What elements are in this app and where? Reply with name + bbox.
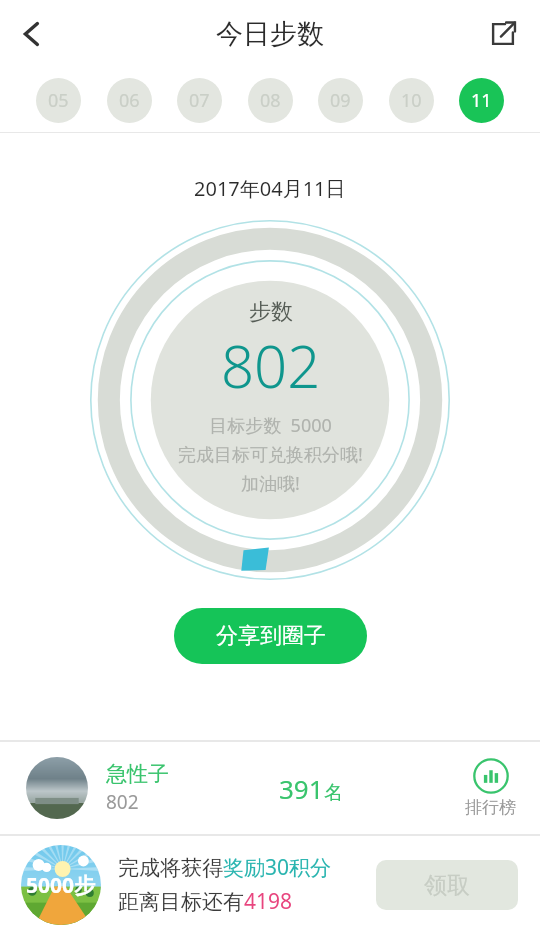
- staticText: 2017年04月11日: [194, 175, 346, 202]
- staticText: 排行榜: [465, 797, 516, 818]
- staticText: 11: [471, 88, 492, 113]
- staticText: 名: [324, 781, 343, 805]
- button[interactable]: 10: [389, 78, 434, 123]
- staticText: 10: [401, 88, 422, 113]
- staticText: 目标步数 5000: [209, 413, 332, 438]
- staticText: 802: [221, 326, 321, 405]
- button[interactable]: 排行榜: [459, 754, 522, 822]
- button[interactable]: 09: [318, 78, 363, 123]
- staticText: 完成目标可兑换积分哦!: [178, 442, 363, 467]
- staticText: 分享到圈子: [216, 622, 326, 650]
- staticText: 05: [48, 88, 69, 113]
- staticText: 07: [189, 88, 210, 113]
- staticText: 今日步数: [216, 17, 324, 51]
- staticText: 加油哦!: [241, 471, 300, 496]
- staticText: 08: [260, 88, 281, 113]
- staticText: 391: [279, 771, 324, 806]
- staticText: 领取: [424, 871, 470, 900]
- staticText: 802: [106, 789, 139, 815]
- staticText: 09: [330, 88, 351, 113]
- button[interactable]: Back: [4, 6, 60, 62]
- button[interactable]: 07: [177, 78, 222, 123]
- button[interactable]: 11: [459, 78, 504, 123]
- button[interactable]: 05: [36, 78, 81, 123]
- staticText: 5000步: [26, 871, 96, 900]
- staticText: 步数: [249, 298, 293, 326]
- staticText: 06: [119, 88, 140, 113]
- button[interactable]: 08: [248, 78, 293, 123]
- button[interactable]: 06: [107, 78, 152, 123]
- staticText: 急性子: [106, 761, 169, 787]
- staticText: 完成将获得奖励30积分: [118, 853, 332, 882]
- button[interactable]: 分享到圈子: [174, 608, 367, 664]
- staticText: 距离目标还有4198: [118, 887, 293, 916]
- button[interactable]: Share: [476, 7, 530, 61]
- button[interactable]: 急性子: [0, 742, 540, 834]
- button[interactable]: 领取: [376, 860, 518, 910]
